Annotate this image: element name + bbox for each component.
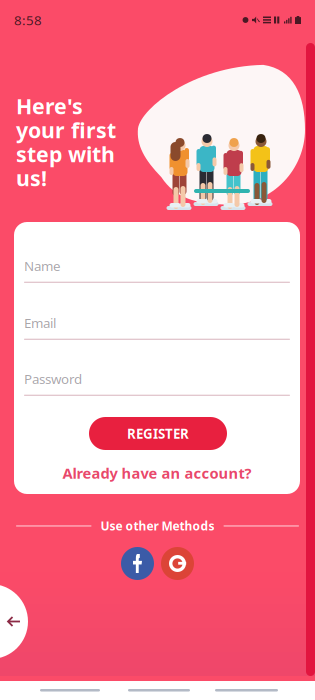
staticText: Here's	[16, 92, 83, 120]
staticText: Email	[24, 314, 56, 332]
button[interactable]: Continue with Facebook	[121, 547, 154, 580]
staticText: Use other Methods	[100, 518, 214, 534]
staticText: Password	[24, 370, 82, 388]
staticText: 8:58	[14, 11, 42, 29]
button[interactable]: Continue with Google	[161, 547, 194, 580]
staticText: REGISTER	[127, 425, 189, 442]
button[interactable]: Back	[0, 584, 28, 659]
staticText: step with	[16, 140, 115, 168]
staticText: us!	[16, 164, 47, 192]
staticText: your first	[16, 116, 116, 144]
button[interactable]: REGISTER	[89, 417, 227, 450]
staticText: Name	[24, 257, 61, 275]
button[interactable]: Already have an account?	[24, 464, 290, 482]
staticText: Already have an account?	[62, 463, 251, 483]
